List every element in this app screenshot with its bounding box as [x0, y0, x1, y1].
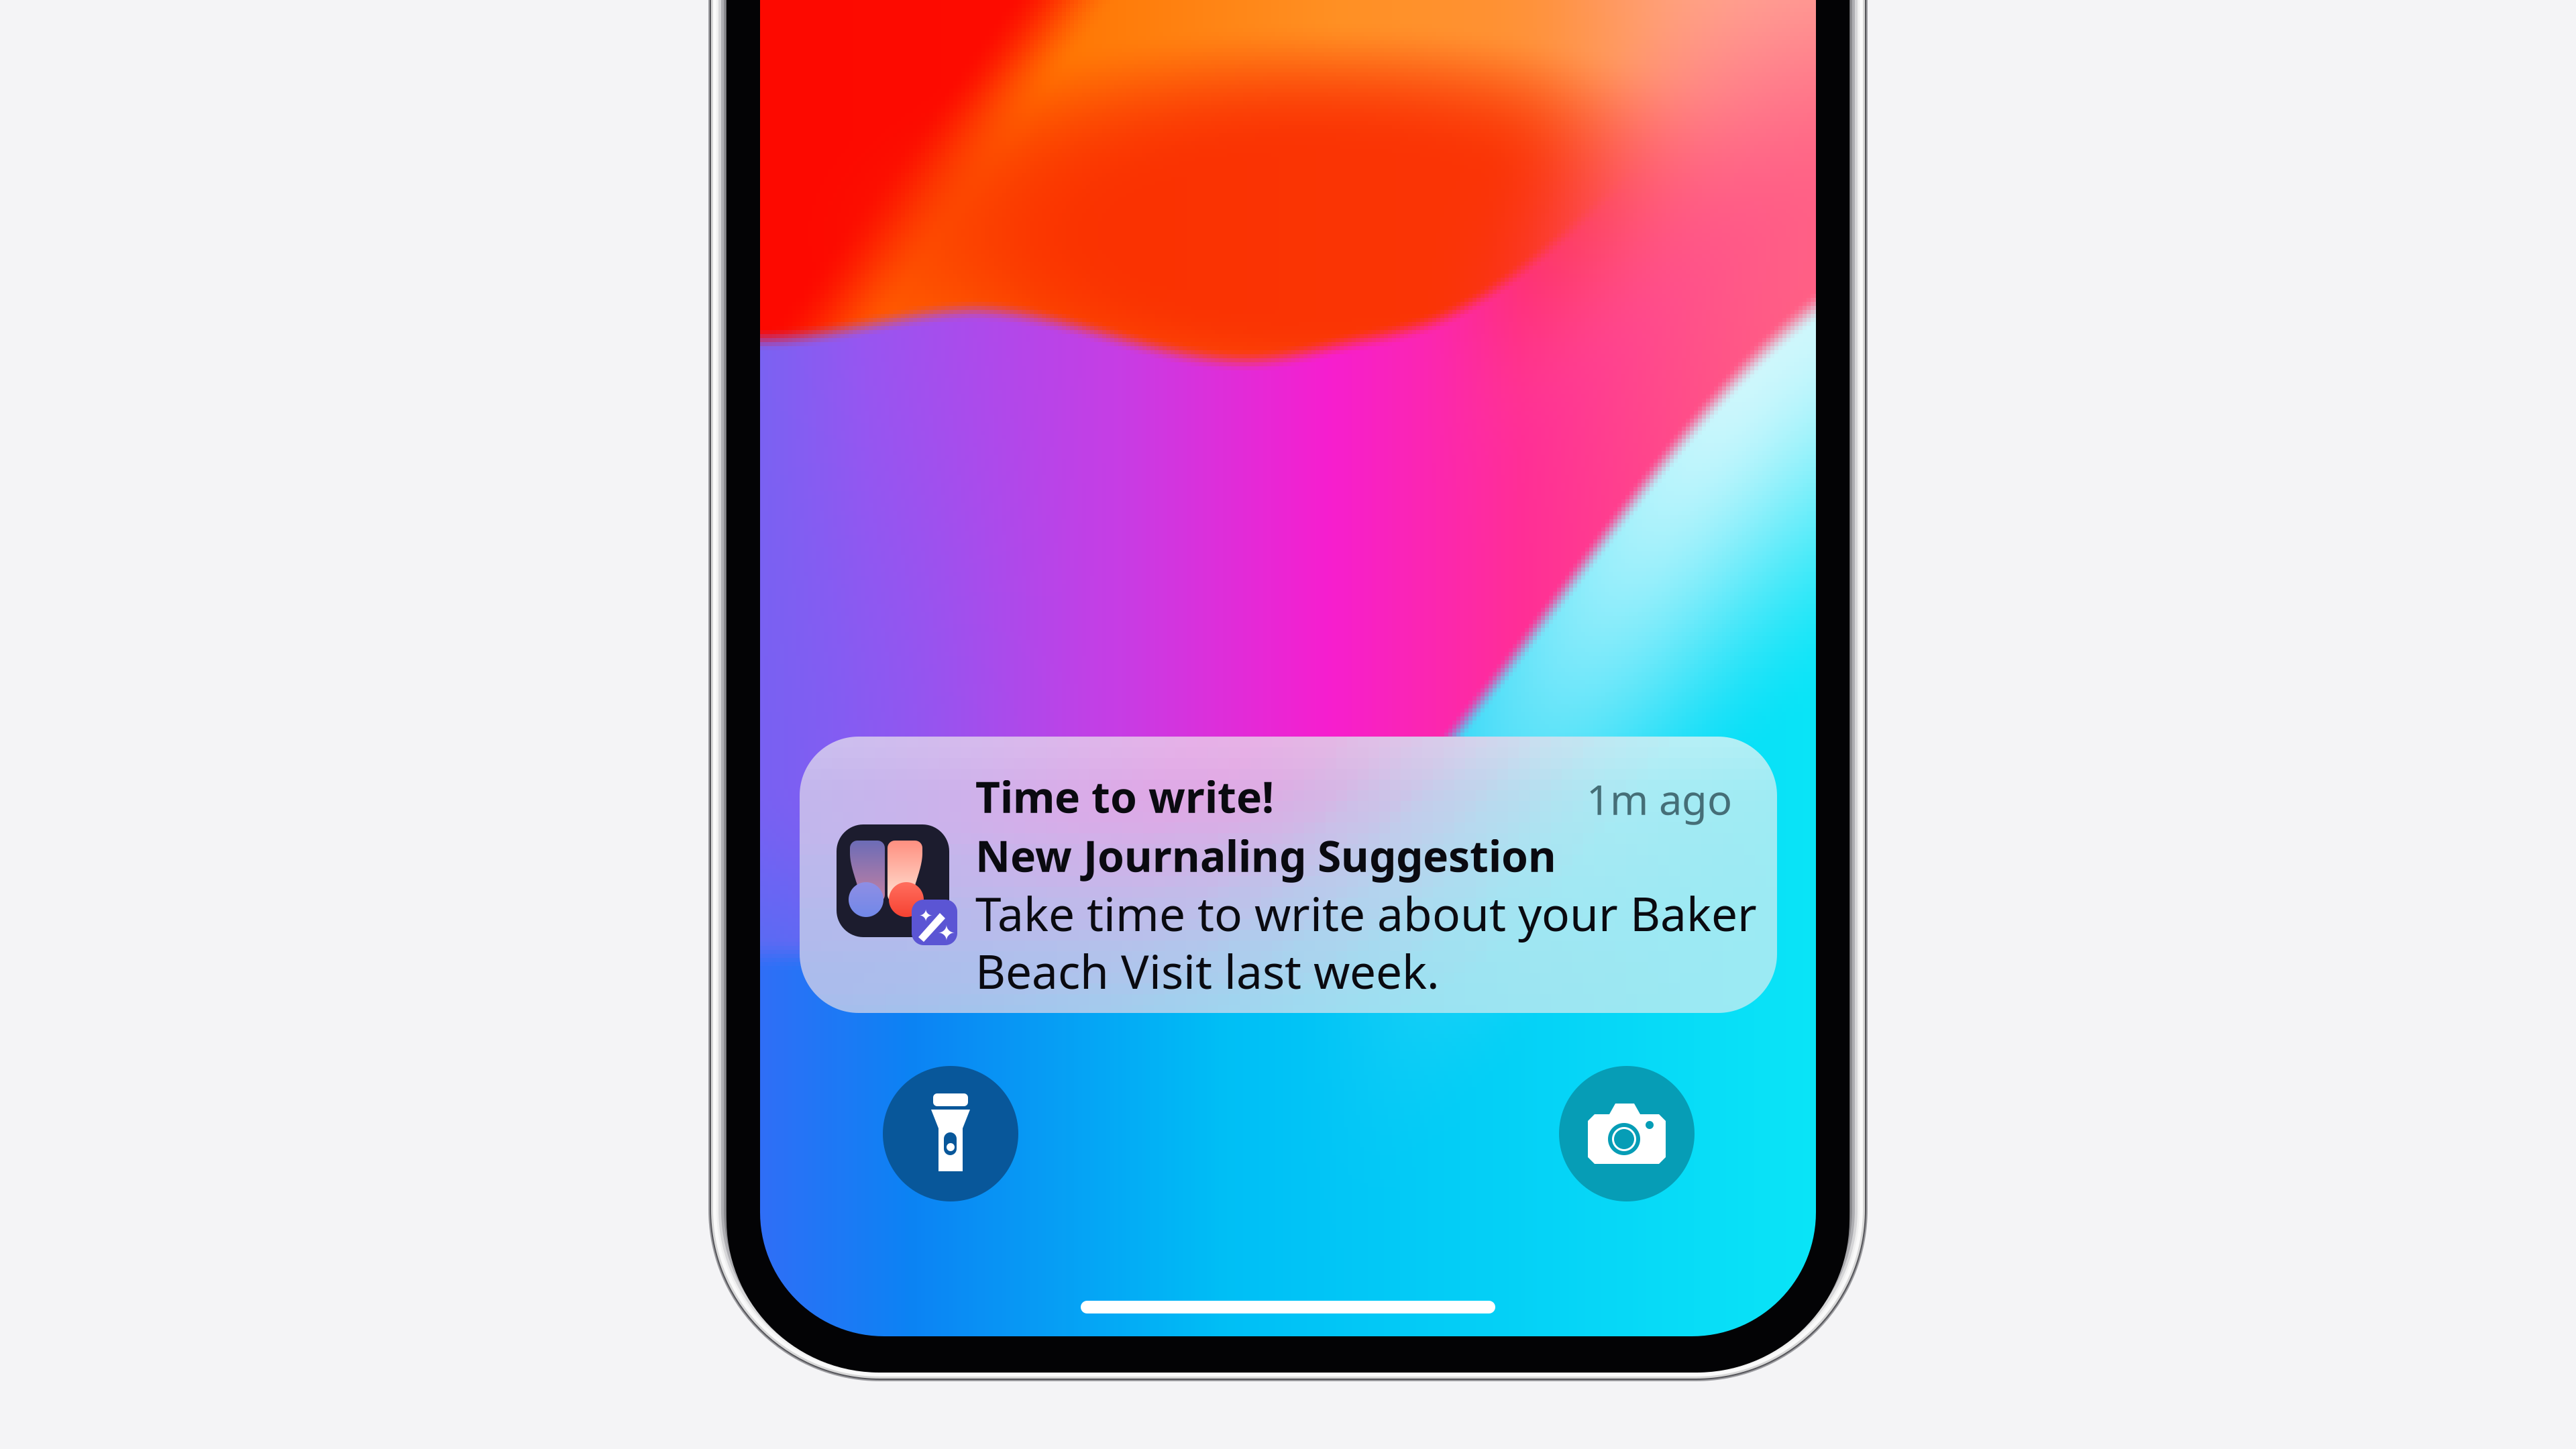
- staticText: Time to write!: [975, 768, 1274, 825]
- staticText: Beach Visit last week.: [975, 940, 1440, 1002]
- staticText: ✦: [937, 921, 956, 945]
- staticText: New Journaling Suggestion: [975, 827, 1556, 884]
- button[interactable]: Camera: [1559, 1066, 1695, 1201]
- button[interactable]: ✦: [800, 737, 1777, 1013]
- button[interactable]: Flashlight: [883, 1066, 1018, 1201]
- staticText: 1m ago: [1587, 772, 1732, 826]
- staticText: Take time to write about your Baker: [975, 882, 1757, 944]
- staticText: ✦: [919, 906, 933, 925]
